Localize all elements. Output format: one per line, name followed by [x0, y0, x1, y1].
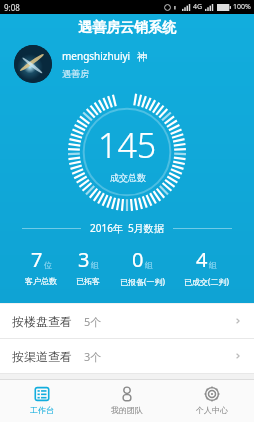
button[interactable]: 个人中心 [169, 380, 254, 422]
staticText: 已成交(二判) [184, 276, 229, 287]
staticText: 100% [233, 2, 251, 12]
staticText: 4G [193, 2, 203, 12]
staticText: 位 [44, 260, 52, 270]
staticText: 0 [132, 246, 144, 273]
staticText: 我的团队 [111, 405, 143, 415]
staticText: 7 [31, 246, 43, 273]
staticText: 组 [145, 260, 153, 270]
staticText: 2016年 5月数据 [90, 221, 164, 235]
staticText: 已报备(一判) [120, 276, 165, 287]
staticText: mengshizhuiyi [62, 49, 131, 63]
staticText: 9:08 [4, 2, 20, 13]
staticText: 组 [91, 260, 99, 270]
staticText: 成交总数 [110, 172, 146, 183]
staticText: 按楼盘查看 [12, 314, 72, 329]
staticText: 遇善房云销系统 [0, 19, 254, 37]
staticText: 已拓客 [76, 276, 100, 286]
staticText: 遇善房 [62, 68, 89, 79]
staticText: 145 [98, 122, 157, 168]
staticText: 3 [78, 246, 90, 273]
staticText: 工作台 [30, 405, 54, 415]
staticText: 4 [196, 246, 208, 273]
staticText: 按渠道查看 [12, 349, 72, 364]
button[interactable]: 我的团队 [84, 380, 169, 422]
staticText: 3个 [84, 349, 102, 364]
staticText: 组 [209, 260, 217, 270]
staticText: 个人中心 [196, 405, 228, 415]
button[interactable]: 按渠道查看 [0, 339, 254, 373]
staticText: 客户总数 [25, 276, 57, 286]
staticText: 神 [137, 50, 147, 63]
button[interactable]: 按楼盘查看 [0, 304, 254, 338]
button[interactable]: 工作台 [0, 380, 84, 422]
staticText: 5个 [84, 314, 102, 329]
button[interactable]: Profile avatar [14, 45, 52, 83]
